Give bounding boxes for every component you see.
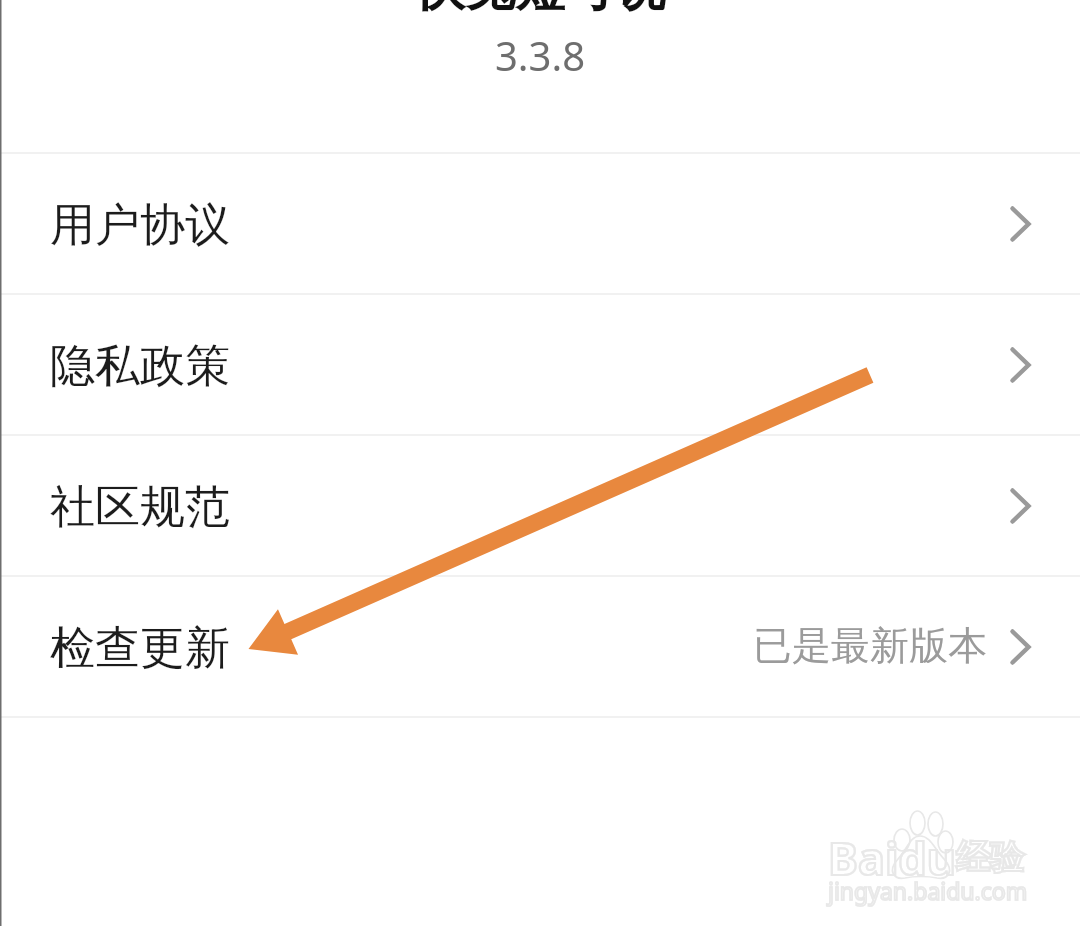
other: Open 社区规范 (1011, 489, 1030, 523)
button[interactable]: 检查更新 (0, 577, 1080, 716)
other: Open 隐私政策 (1011, 348, 1030, 382)
button[interactable]: 社区规范 (0, 436, 1080, 575)
button[interactable]: 用户协议 (0, 154, 1080, 293)
staticText: Baidu (828, 827, 957, 888)
staticText: 已是最新版本 (753, 621, 987, 670)
staticText: 3.3.8 (0, 28, 1080, 82)
staticText: 社区规范 (50, 479, 230, 536)
staticText: 用户协议 (50, 197, 230, 254)
button[interactable]: 隐私政策 (0, 295, 1080, 434)
staticText: jingyan.baidu.com (828, 875, 1028, 906)
staticText: 快兔短号说 (0, 0, 1080, 20)
other: Open 检查更新 (1011, 630, 1030, 664)
staticText: 隐私政策 (50, 338, 230, 395)
other: Open 用户协议 (1011, 207, 1030, 241)
staticText: 经验 (956, 836, 1024, 879)
staticText: 检查更新 (50, 620, 230, 677)
